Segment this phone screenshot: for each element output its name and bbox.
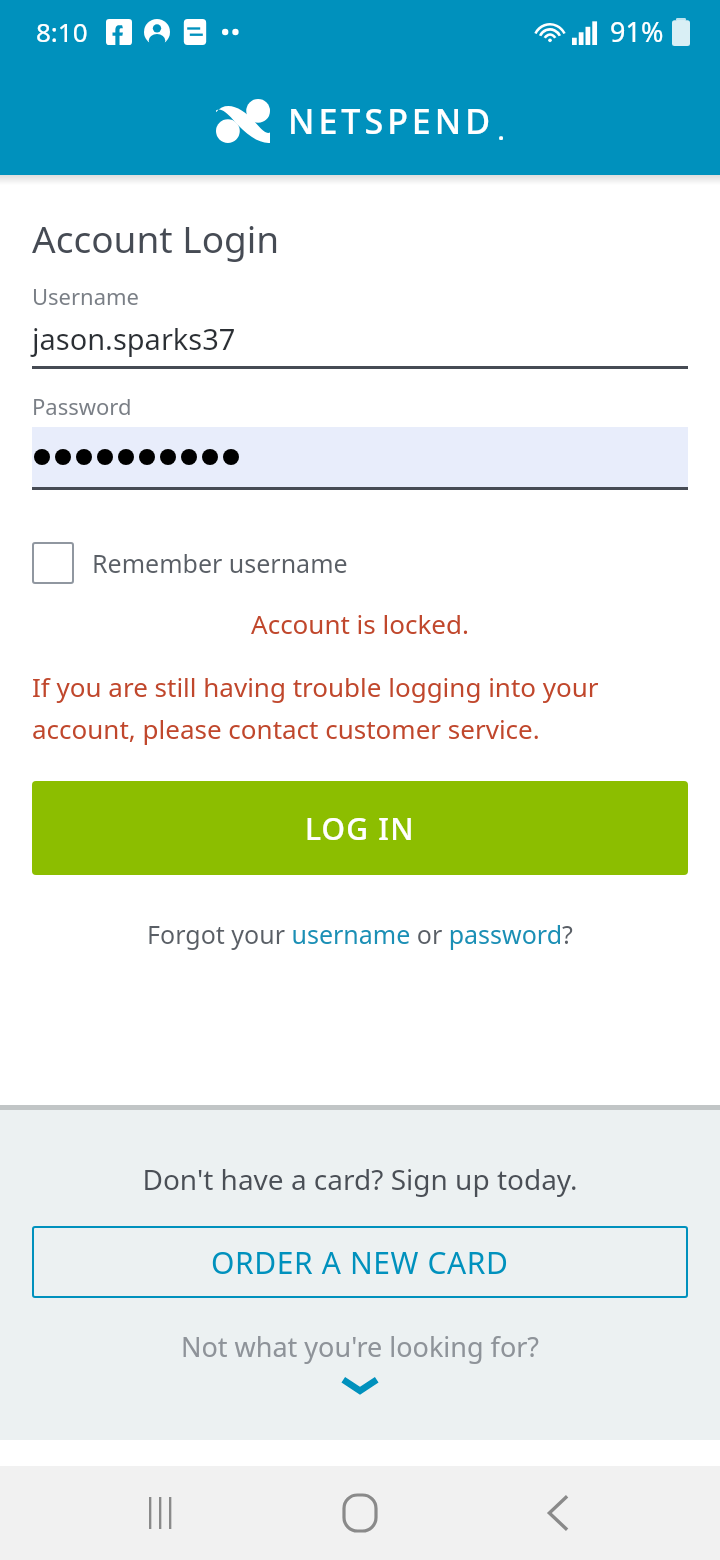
staticText: Account is locked. bbox=[0, 606, 720, 641]
staticText: NETSPEND bbox=[288, 98, 495, 144]
staticText: LOG IN bbox=[305, 808, 415, 849]
other: Expand bbox=[338, 1375, 382, 1397]
staticText: Account Login bbox=[32, 213, 280, 263]
other: Netspend logo bbox=[216, 99, 270, 143]
button[interactable]: LOG IN bbox=[32, 781, 688, 875]
button[interactable]: Recent apps bbox=[126, 1477, 198, 1549]
button[interactable]: Forgot your username or password? bbox=[0, 917, 720, 951]
staticText: Password bbox=[32, 391, 132, 421]
staticText: Forgot your username or password? bbox=[147, 917, 573, 951]
button[interactable]: Back bbox=[522, 1477, 594, 1549]
staticText: Username bbox=[32, 281, 140, 311]
staticText: If you are still having trouble logging … bbox=[32, 669, 688, 747]
button[interactable]: ORDER A NEW CARD bbox=[32, 1226, 688, 1298]
staticText: 8:10 bbox=[36, 14, 88, 49]
staticText: ORDER A NEW CARD bbox=[211, 1242, 509, 1283]
button[interactable]: Remember username bbox=[32, 542, 348, 584]
staticText: jason.sparks37 bbox=[32, 319, 236, 358]
button[interactable]: Not what you're looking for? bbox=[0, 1328, 720, 1397]
staticText: . bbox=[498, 116, 505, 146]
button[interactable]: Home bbox=[324, 1477, 396, 1549]
staticText: Remember username bbox=[92, 546, 348, 580]
staticText: 91% bbox=[610, 13, 664, 50]
button[interactable]: jason.sparks37 bbox=[32, 319, 688, 369]
staticText: Don't have a card? Sign up today. bbox=[0, 1160, 720, 1198]
button[interactable] bbox=[32, 427, 688, 490]
staticText: Not what you're looking for? bbox=[0, 1328, 720, 1365]
